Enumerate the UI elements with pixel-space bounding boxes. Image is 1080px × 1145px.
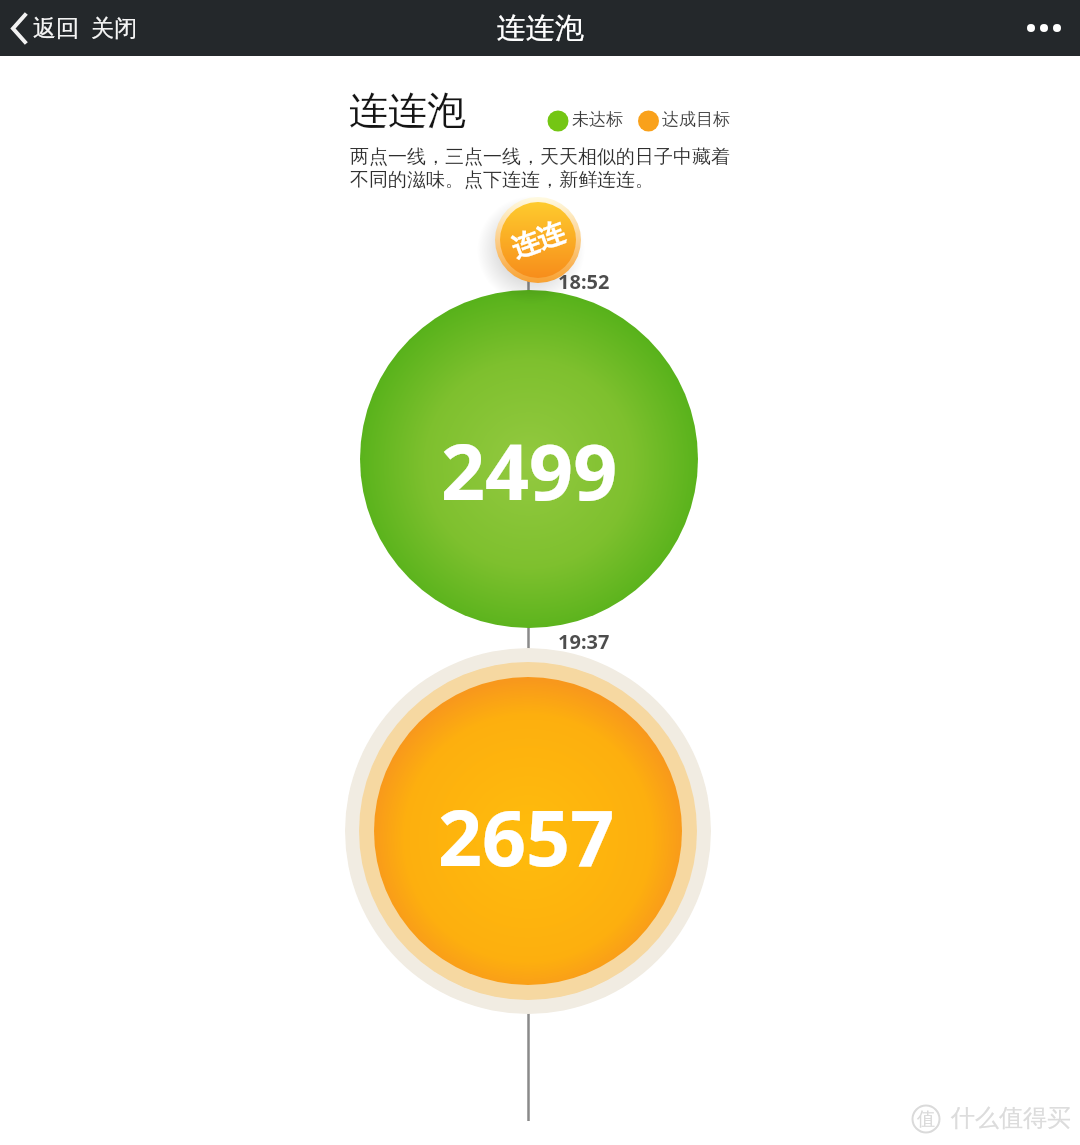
button[interactable]: 关闭 [91, 14, 137, 43]
staticText: 2657 [438, 784, 615, 889]
staticText: 连连 [507, 215, 569, 265]
staticText: 两点一线，三点一线，天天相似的日子中藏着 不同的滋味。点下连连，新鲜连连。 [350, 145, 730, 192]
staticText: 未达标 [572, 109, 623, 130]
staticText: 连连泡 [349, 86, 466, 135]
staticText: 什么值得买 [951, 1103, 1071, 1133]
staticText: 2499 [441, 418, 618, 523]
button[interactable]: 返回 [10, 13, 137, 43]
button[interactable]: 连连 [487, 189, 589, 291]
button[interactable] [1026, 18, 1062, 38]
staticText: 连连泡 [497, 10, 584, 47]
staticText: 返回 [33, 14, 79, 43]
staticText: 达成目标 [662, 109, 730, 130]
staticText: 19:37 [558, 628, 610, 655]
staticText: 值 [917, 1108, 935, 1131]
staticText: 18:52 [558, 268, 610, 295]
